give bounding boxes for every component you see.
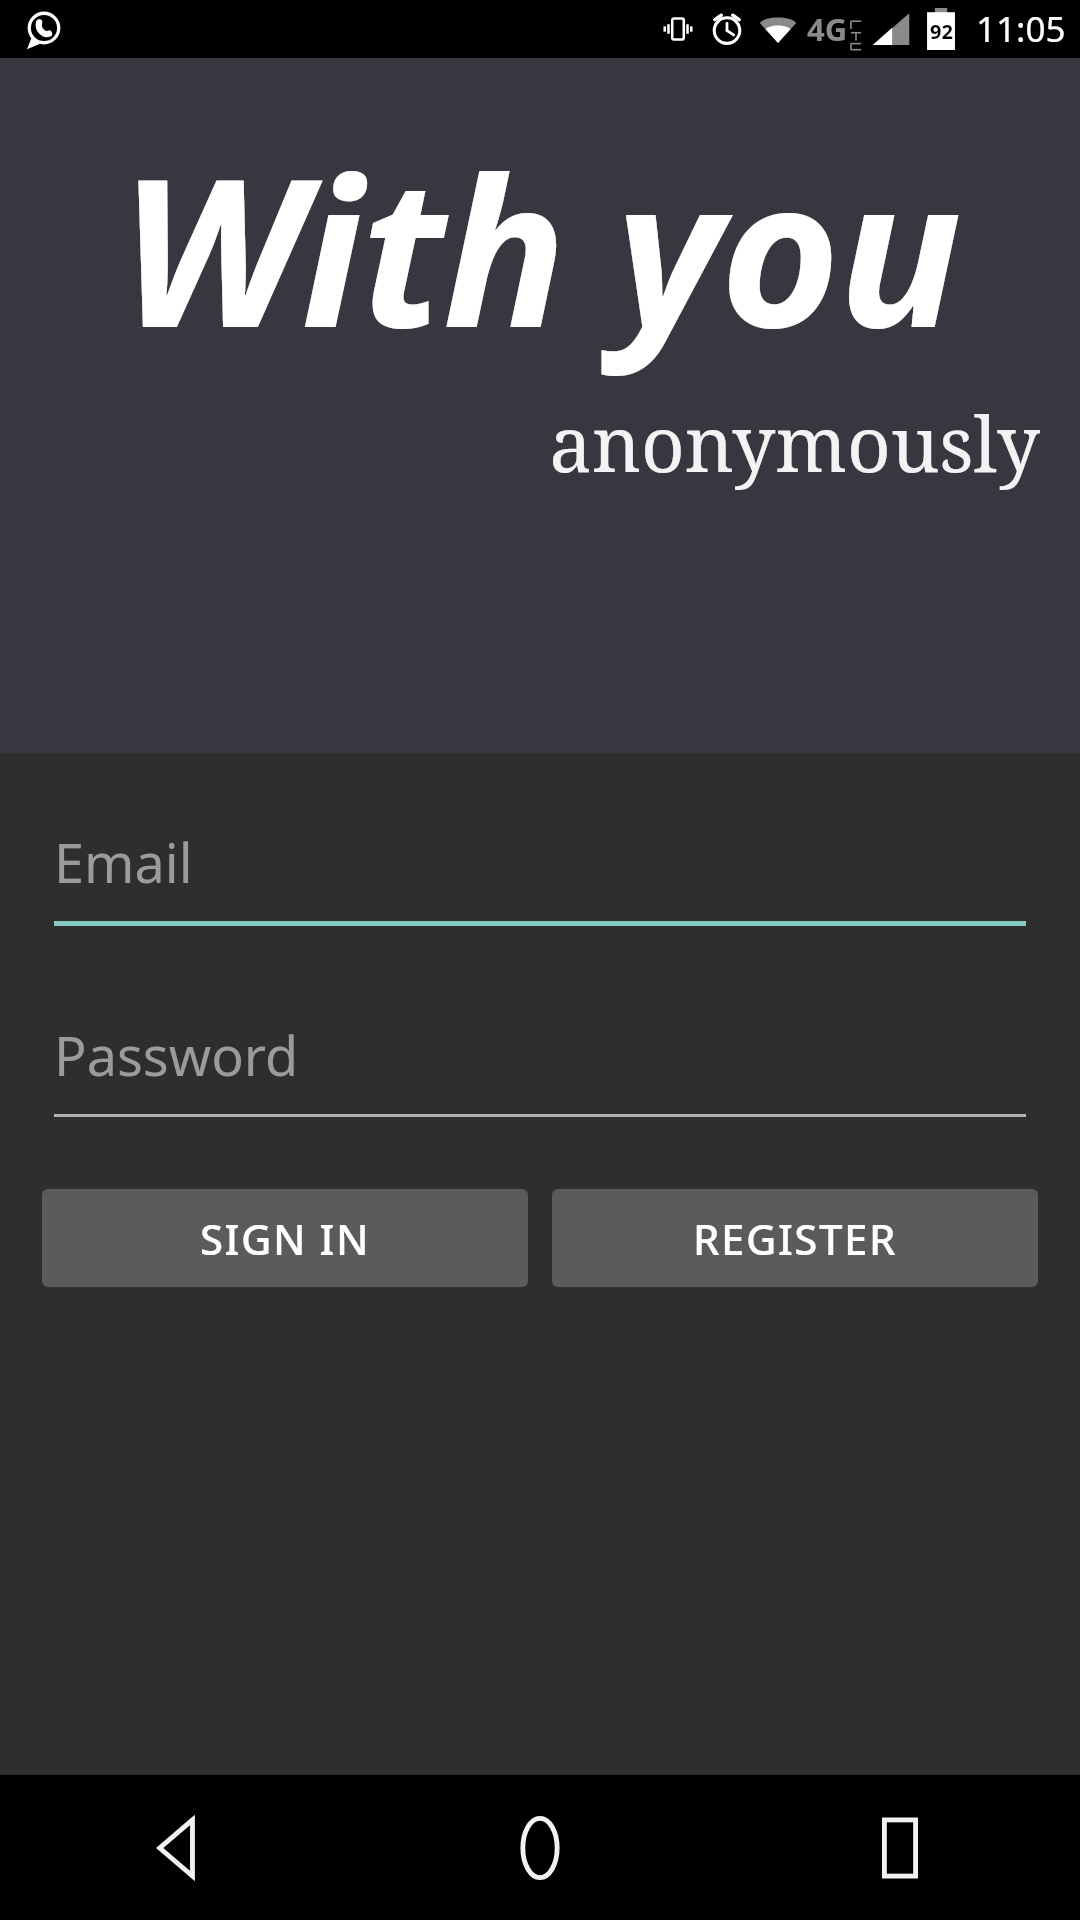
staticText: REGISTER (693, 1210, 897, 1267)
button[interactable]: Email (54, 825, 1026, 926)
staticText: 92 (930, 18, 953, 45)
staticText: Password (54, 1018, 299, 1092)
button[interactable]: REGISTER (552, 1189, 1038, 1287)
staticText: 4G (807, 8, 848, 50)
staticText: SIGN IN (200, 1210, 370, 1267)
button[interactable]: Back (0, 1775, 360, 1920)
staticText: 11:05 (976, 5, 1066, 53)
button[interactable]: Home (360, 1775, 720, 1920)
staticText: anonymously (40, 391, 1040, 495)
button[interactable]: Password (54, 1018, 1026, 1117)
button[interactable]: Recent apps (720, 1775, 1080, 1920)
staticText: Email (54, 825, 193, 899)
button[interactable]: SIGN IN (42, 1189, 528, 1287)
staticText: With you (40, 108, 1040, 387)
